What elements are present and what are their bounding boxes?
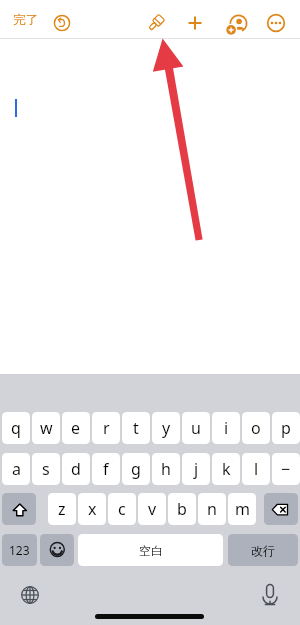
button[interactable]: q [2,412,30,444]
staticText: q [11,417,21,439]
staticText: t [133,417,139,439]
button[interactable]: g [122,453,150,485]
staticText: 空白 [139,543,163,558]
staticText: f [103,458,109,480]
staticText: m [235,498,250,520]
button[interactable]: 空白 [78,534,223,566]
button[interactable]: s [32,453,60,485]
staticText: 改行 [251,543,275,558]
button[interactable]: 123 [2,534,37,566]
staticText: y [162,417,171,439]
staticText: v [148,498,157,520]
staticText: g [131,458,141,480]
button[interactable]: y [152,412,180,444]
button[interactable]: v [138,493,166,525]
button[interactable]: i [212,412,240,444]
button[interactable]: Emoji [40,534,74,566]
button[interactable]: b [168,493,196,525]
staticText: w [40,417,53,439]
button[interactable]: o [242,412,270,444]
staticText: i [224,417,229,439]
button[interactable]: d [62,453,90,485]
button[interactable]: u [182,412,210,444]
staticText: x [88,498,97,520]
button[interactable]: x [78,493,106,525]
button[interactable]: More [263,10,289,36]
button[interactable]: h [152,453,180,485]
button[interactable]: Undo [49,10,75,36]
staticText: n [207,498,217,520]
button[interactable]: k [212,453,240,485]
button[interactable]: e [62,412,90,444]
staticText: c [118,498,126,520]
staticText: e [71,417,81,439]
staticText: 完了 [13,12,38,28]
staticText: z [58,498,66,520]
staticText: s [42,458,50,480]
button[interactable]: Dictation [261,584,279,606]
button[interactable]: j [182,453,210,485]
button[interactable]: Backspace [264,493,298,525]
button[interactable]: Next keyboard [21,586,39,604]
button[interactable]: l [242,453,270,485]
button[interactable]: z [48,493,76,525]
button[interactable]: 完了 [7,8,44,32]
button[interactable]: Shift [2,493,36,525]
button[interactable]: Share [224,11,250,37]
staticText: k [222,458,231,480]
button[interactable]: w [32,412,60,444]
staticText: u [191,417,201,439]
button[interactable]: m [228,493,256,525]
button[interactable]: Markup [143,10,169,36]
staticText: d [71,458,81,480]
staticText: l [254,458,259,480]
button[interactable]: p [272,412,300,444]
button[interactable]: t [122,412,150,444]
staticText: j [194,458,199,480]
button[interactable]: 改行 [228,534,298,566]
button[interactable]: − [272,453,300,485]
staticText: p [281,417,291,439]
staticText: 123 [9,542,30,558]
staticText: o [251,417,261,439]
button[interactable]: c [108,493,136,525]
button[interactable]: r [92,412,120,444]
staticText: b [177,498,187,520]
button[interactable]: n [198,493,226,525]
button[interactable]: f [92,453,120,485]
button[interactable]: a [2,453,30,485]
staticText: − [281,458,291,480]
staticText: a [12,458,21,480]
button[interactable]: Add [182,10,208,36]
staticText: h [161,458,171,480]
staticText: r [103,417,110,439]
